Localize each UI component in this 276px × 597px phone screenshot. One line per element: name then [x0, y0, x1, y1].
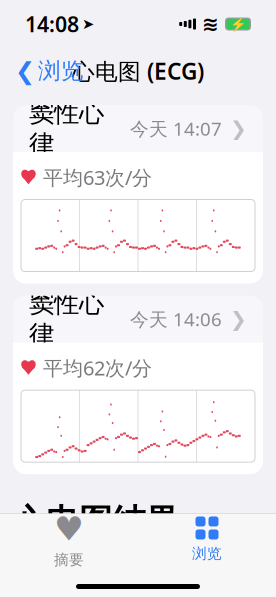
button[interactable]: ♥	[0, 504, 138, 573]
button[interactable]: 窦性心律	[13, 105, 263, 284]
button[interactable]: 浏览	[138, 510, 276, 566]
button[interactable]: 所有数据	[13, 551, 263, 597]
staticText: 平均62次/分	[43, 355, 152, 381]
staticText: ♥	[54, 510, 84, 548]
button[interactable]: 窦性心律	[13, 296, 263, 474]
staticText: ➤	[82, 16, 94, 32]
staticText: ❯	[230, 117, 247, 140]
staticText: ≋	[202, 13, 219, 35]
staticText: ❯	[230, 308, 247, 330]
staticText: 摘要	[54, 551, 84, 569]
staticText: 今天 14:06	[130, 307, 222, 331]
staticText: 平均63次/分	[43, 164, 152, 191]
staticText: 心电图 (ECG)	[72, 56, 204, 86]
staticText: 今天 14:07	[130, 116, 222, 141]
staticText: 所有数据	[29, 562, 125, 591]
staticText: 心电图结果	[13, 501, 178, 542]
staticText: ♥	[19, 356, 37, 379]
staticText: 窦性心律	[29, 288, 104, 350]
staticText: ♥	[19, 166, 37, 189]
staticText: 浏览	[192, 544, 222, 562]
staticText: ❮	[15, 57, 35, 85]
staticText: ⚡	[229, 16, 246, 32]
staticText: 窦性心律	[29, 97, 104, 160]
staticText: 14:08	[25, 10, 79, 38]
staticText: 浏览	[38, 57, 84, 85]
button[interactable]: ❮	[6, 50, 93, 92]
